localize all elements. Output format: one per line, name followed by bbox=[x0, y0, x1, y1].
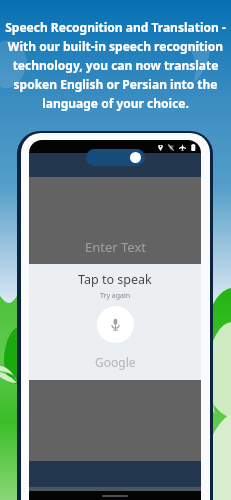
staticText: Tap to speak bbox=[78, 271, 152, 288]
staticText: Enter Text bbox=[85, 238, 146, 256]
staticText: Try again bbox=[100, 291, 131, 301]
button[interactable]: Microphone bbox=[97, 306, 134, 343]
staticText: Speech Recognition and Translation - Wit… bbox=[3, 19, 228, 111]
staticText: Google bbox=[95, 354, 136, 370]
